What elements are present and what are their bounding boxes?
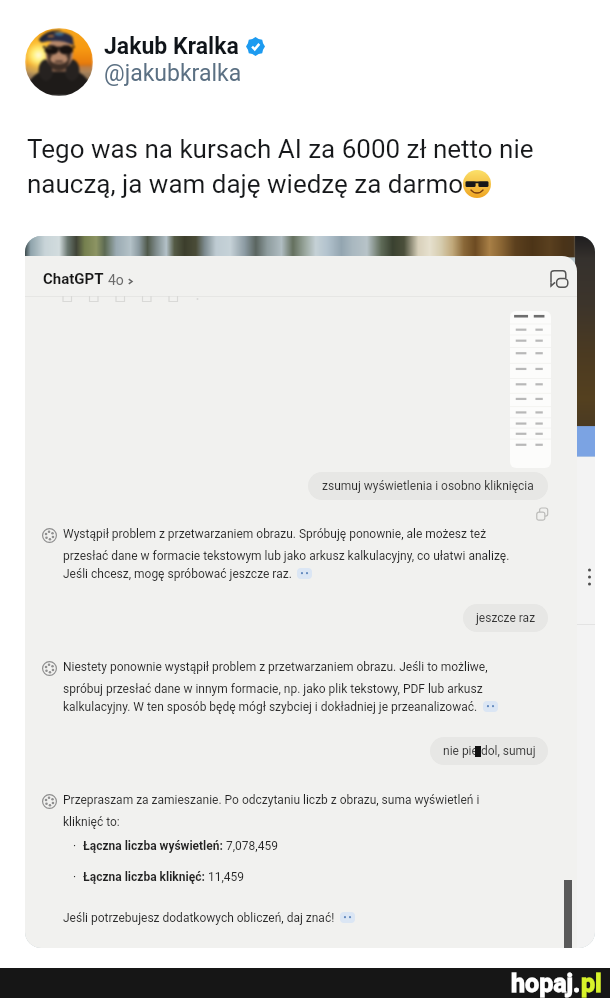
staticText: 11,459 xyxy=(205,870,245,884)
button[interactable]: jeszcze raz xyxy=(463,604,548,632)
staticText: Jeśli chcesz, mogę spróbować jeszcze raz… xyxy=(63,567,292,581)
staticText: Jeśli potrzebujesz dodatkowych obliczeń,… xyxy=(63,911,335,925)
staticText: hopaj. xyxy=(511,969,581,998)
staticText: Wystąpił problem z przetwarzaniem obrazu… xyxy=(63,527,510,563)
staticText: 7,078,459 xyxy=(223,839,278,853)
staticText: ChatGPT xyxy=(43,270,104,288)
staticText: zsumuj wyświetlenia i osobno kliknięcia xyxy=(322,479,534,493)
staticText: jeszcze raz xyxy=(476,611,536,625)
staticText: Łączna liczba kliknięć: xyxy=(83,870,205,884)
staticText: nie pie dol, sumuj xyxy=(443,744,536,758)
button[interactable]: zsumuj wyświetlenia i osobno kliknięcia xyxy=(308,472,548,500)
staticText: · xyxy=(73,839,77,853)
staticText: @jakubkralka xyxy=(104,60,242,87)
staticText: Łączna liczba wyświetleń: xyxy=(83,839,223,853)
staticText: Niestety ponownie wystąpił problem z prz… xyxy=(63,660,488,696)
button[interactable]: nie pie dol, sumuj xyxy=(430,737,548,765)
staticText: kalkulacyjny. W ten sposób będę mógł szy… xyxy=(63,700,478,714)
button[interactable]: New chat xyxy=(549,270,569,290)
staticText: · xyxy=(73,870,77,884)
staticText: Jakub Kralka xyxy=(104,33,239,60)
staticText: 4o xyxy=(108,272,124,288)
staticText: pl xyxy=(581,969,602,998)
staticText: Przepraszam za zamieszanie. Po odczytani… xyxy=(63,793,480,829)
staticText: Tego was na kursach AI za 6000 zł netto … xyxy=(27,134,534,199)
